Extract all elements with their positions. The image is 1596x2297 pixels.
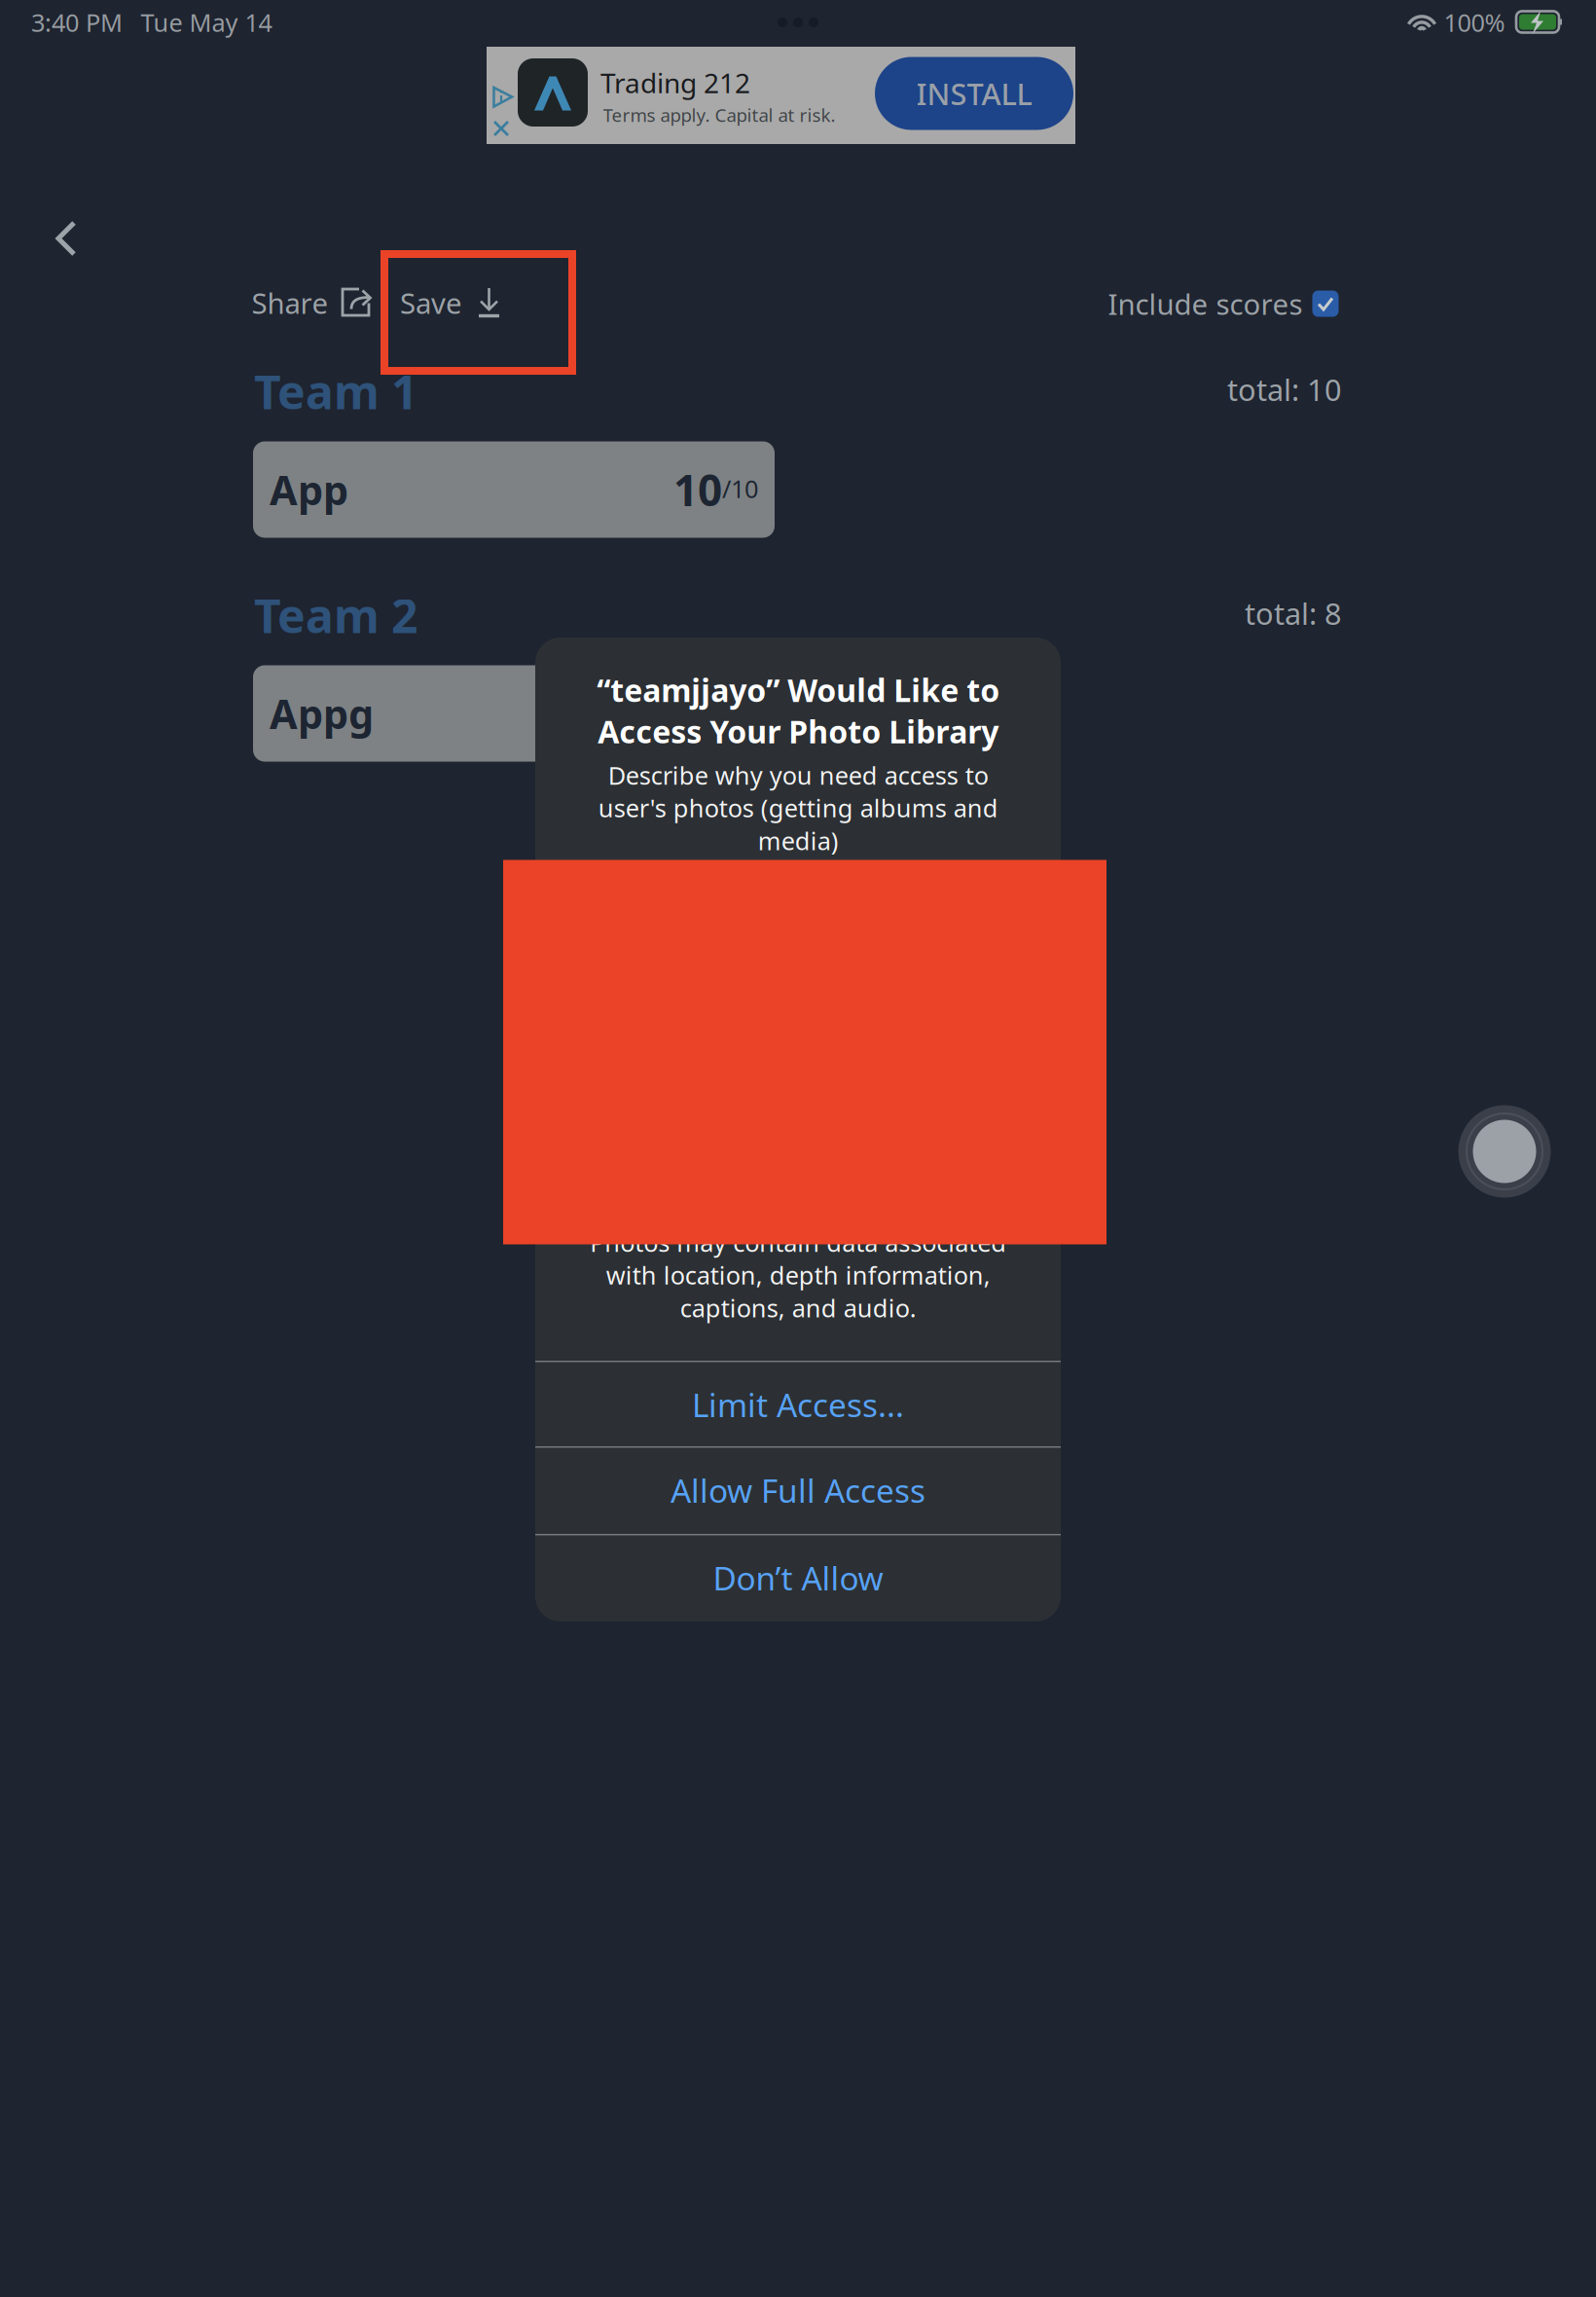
staticText: App: [270, 463, 348, 516]
button[interactable]: INSTALL: [875, 57, 1073, 130]
staticText: Save: [400, 284, 462, 322]
staticText: Tue May 14: [141, 6, 272, 39]
staticText: Appg: [270, 687, 374, 740]
staticText: Team 2: [254, 584, 417, 646]
button[interactable]: Save: [392, 270, 509, 335]
button[interactable]: Ad choices: [492, 86, 514, 109]
staticText: 8: [698, 685, 722, 742]
button[interactable]: Back: [23, 196, 109, 281]
staticText: Limit Access...: [692, 1383, 904, 1426]
button[interactable]: Appg: [253, 665, 775, 762]
staticText: total: 8: [1245, 593, 1342, 633]
staticText: Photos may contain data associated with …: [590, 1226, 1006, 1324]
staticText: 100%: [1444, 6, 1505, 39]
staticText: Allow Full Access: [671, 1469, 925, 1512]
staticText: /10: [722, 696, 758, 729]
button[interactable]: AssistiveTouch: [1458, 1105, 1551, 1198]
staticText: INSTALL: [916, 74, 1032, 113]
button[interactable]: Share: [244, 270, 379, 335]
button[interactable]: App: [253, 441, 775, 538]
button[interactable]: Close ad: [492, 120, 510, 137]
staticText: Trading 212: [600, 65, 750, 101]
staticText: “teamjjayo” Would Like to Access Your Ph…: [597, 669, 999, 752]
button[interactable]: Limit Access...: [535, 1362, 1061, 1447]
staticText: total: 10: [1227, 369, 1342, 409]
button[interactable]: Allow Full Access: [535, 1448, 1061, 1532]
button[interactable]: Don’t Allow: [535, 1535, 1061, 1620]
button[interactable]: Include scores: [1100, 271, 1346, 336]
staticText: Don’t Allow: [713, 1556, 883, 1599]
staticText: Terms apply. Capital at risk.: [603, 103, 835, 127]
staticText: 10: [673, 461, 722, 518]
staticText: Share: [252, 284, 328, 322]
staticText: Describe why you need access to user's p…: [598, 759, 998, 857]
staticText: Team 1: [254, 360, 417, 422]
staticText: Include scores: [1108, 285, 1303, 323]
staticText: 3:40 PM: [31, 6, 123, 39]
staticText: /10: [722, 472, 758, 505]
